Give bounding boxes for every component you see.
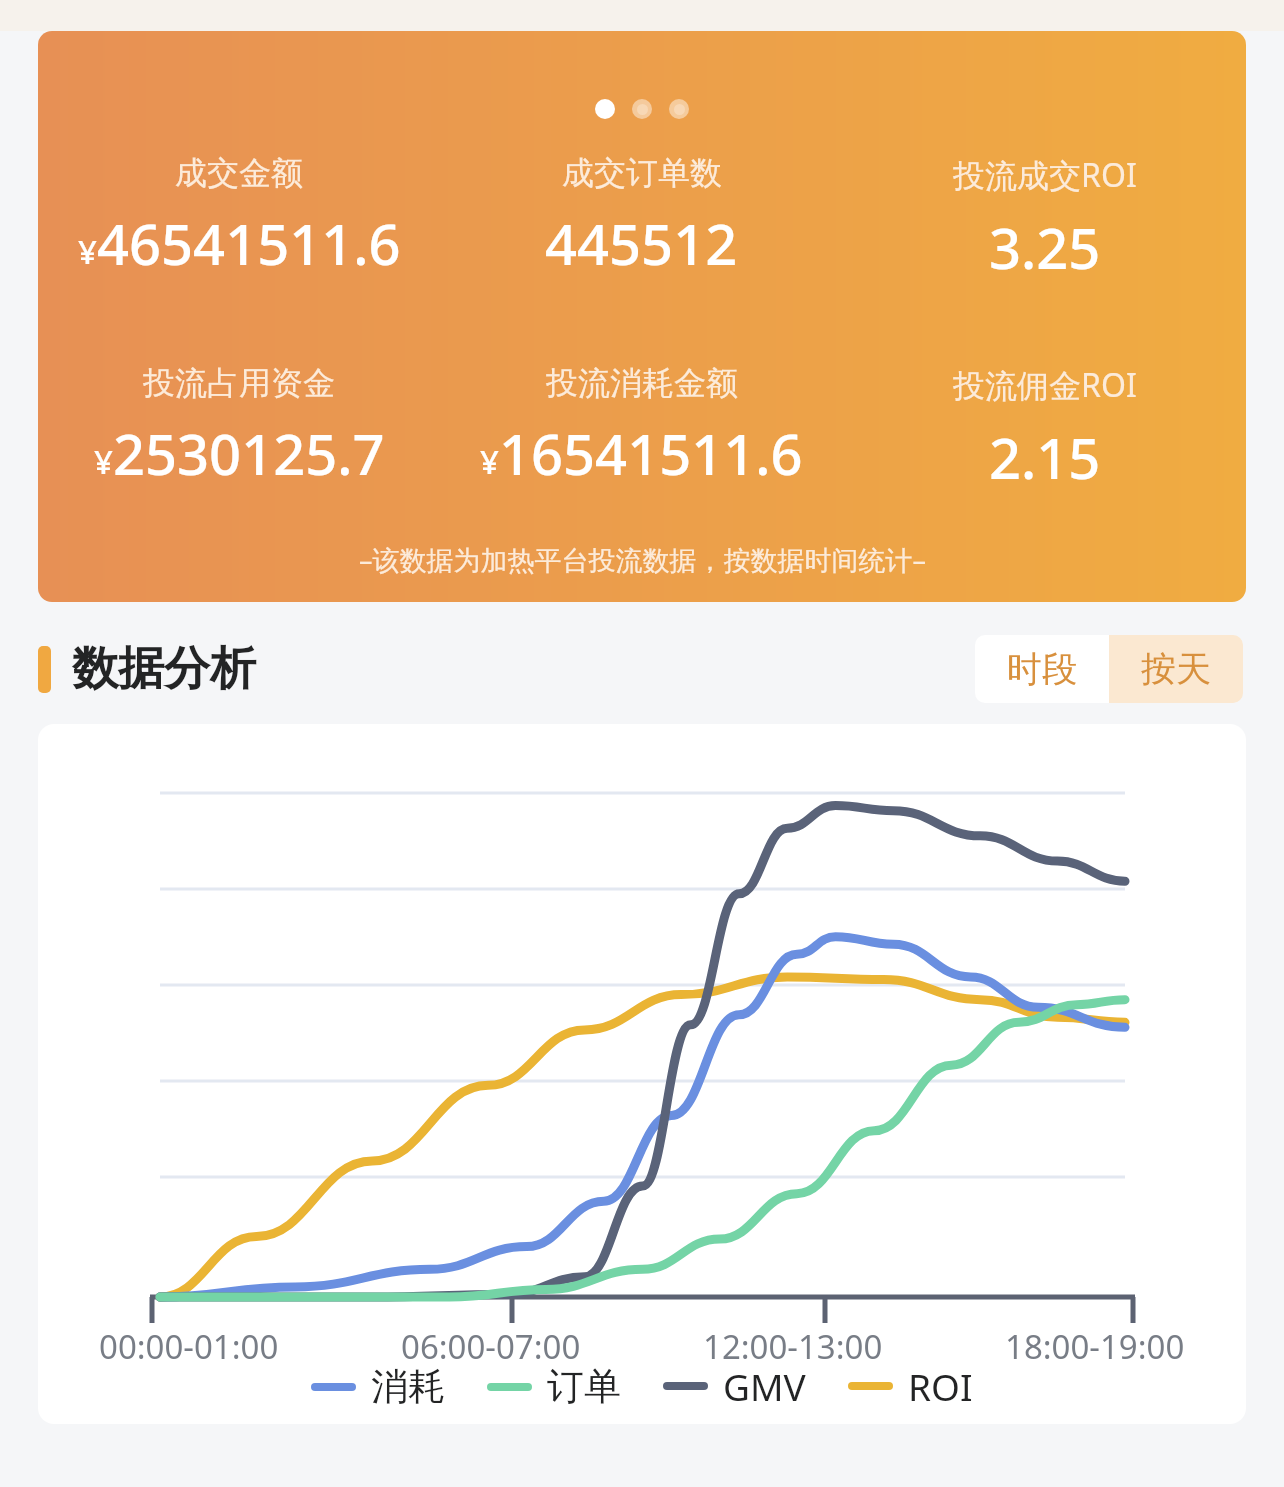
staticText: 消耗 bbox=[371, 1363, 445, 1410]
button[interactable]: ROI bbox=[848, 1361, 973, 1411]
staticText: 46541511.6 bbox=[97, 205, 401, 281]
staticText: 2530125.7 bbox=[113, 415, 385, 491]
staticText: 12:00-13:00 bbox=[703, 1324, 883, 1369]
staticText: 投流消耗金额 bbox=[546, 363, 738, 403]
staticText: 18:00-19:00 bbox=[1005, 1324, 1185, 1369]
staticText: –该数据为加热平台投流数据，按数据时间统计– bbox=[359, 541, 926, 578]
staticText: 按天 bbox=[1141, 647, 1211, 691]
staticText: 2.15 bbox=[989, 419, 1101, 495]
button[interactable]: GMV bbox=[663, 1361, 806, 1411]
button[interactable]: 按天 bbox=[1109, 635, 1243, 703]
staticText: 数据分析 bbox=[72, 640, 256, 698]
staticText: 时段 bbox=[1007, 647, 1077, 691]
staticText: 445512 bbox=[545, 205, 738, 281]
staticText: GMV bbox=[723, 1361, 806, 1411]
button[interactable]: 时段 bbox=[975, 635, 1109, 703]
staticText: ¥ bbox=[480, 439, 499, 484]
button[interactable]: 消耗 bbox=[311, 1363, 445, 1410]
button[interactable]: 订单 bbox=[487, 1363, 621, 1410]
staticText: ¥ bbox=[78, 229, 97, 274]
staticText: 投流成交ROI bbox=[953, 153, 1137, 197]
staticText: 成交订单数 bbox=[562, 153, 722, 193]
staticText: 00:00-01:00 bbox=[99, 1324, 279, 1369]
staticText: 16541511.6 bbox=[499, 415, 803, 491]
staticText: ¥ bbox=[94, 439, 113, 484]
staticText: 3.25 bbox=[989, 209, 1101, 285]
staticText: 投流占用资金 bbox=[143, 363, 335, 403]
staticText: 成交金额 bbox=[175, 153, 303, 193]
staticText: 投流佣金ROI bbox=[953, 363, 1137, 407]
staticText: ROI bbox=[908, 1361, 973, 1411]
staticText: 订单 bbox=[547, 1363, 621, 1410]
staticText: 06:00-07:00 bbox=[401, 1324, 581, 1369]
